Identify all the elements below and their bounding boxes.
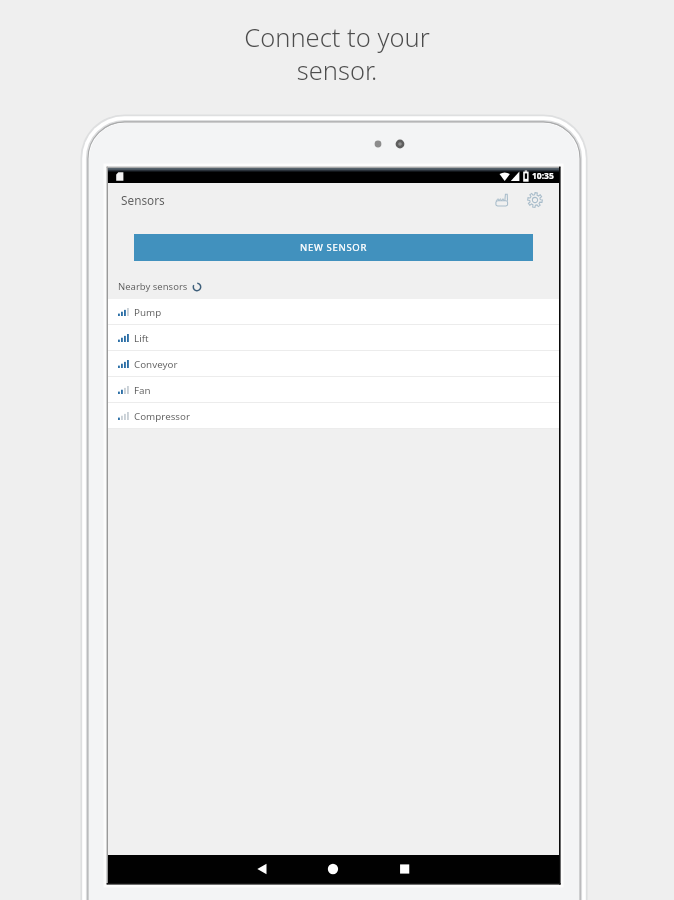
staticText: 10:35 [532, 170, 554, 182]
button[interactable]: Plant [487, 185, 517, 215]
button[interactable]: Conveyor [108, 351, 559, 377]
button[interactable]: NEW SENSOR [134, 234, 533, 261]
staticText: Pump [134, 306, 162, 319]
button[interactable]: Pump [108, 299, 559, 325]
staticText: NEW SENSOR [300, 241, 368, 254]
button[interactable]: Settings [520, 185, 550, 215]
staticText: Fan [134, 384, 151, 397]
staticText: Connect to your sensor. [244, 20, 430, 88]
staticText: Lift [134, 332, 149, 345]
staticText: Conveyor [134, 358, 178, 371]
button[interactable]: Lift [108, 325, 559, 351]
staticText: Sensors [121, 192, 165, 208]
staticText: Nearby sensors [118, 280, 188, 293]
staticText: Compressor [134, 410, 191, 423]
button[interactable]: Fan [108, 377, 559, 403]
button[interactable]: Compressor [108, 403, 559, 429]
